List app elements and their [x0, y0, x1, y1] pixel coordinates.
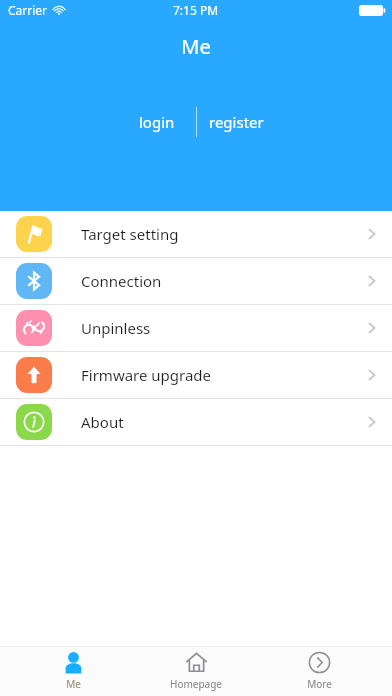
- staticText: Firmware upgrade: [81, 365, 364, 385]
- staticText: 7:15 PM: [173, 2, 219, 18]
- button[interactable]: Unpinless: [0, 305, 392, 351]
- button[interactable]: Target setting: [0, 211, 392, 257]
- button[interactable]: login: [118, 107, 196, 137]
- staticText: Carrier: [8, 2, 48, 18]
- staticText: register: [209, 112, 264, 132]
- staticText: Connection: [81, 271, 364, 291]
- staticText: Target setting: [81, 224, 364, 244]
- staticText: Me: [0, 33, 392, 60]
- staticText: Homepage: [170, 677, 222, 691]
- staticText: Me: [66, 677, 81, 691]
- button[interactable]: register: [197, 107, 275, 137]
- staticText: About: [81, 412, 364, 432]
- button[interactable]: About: [0, 399, 392, 445]
- staticText: login: [139, 112, 175, 132]
- staticText: Unpinless: [81, 318, 364, 338]
- button[interactable]: Firmware upgrade: [0, 352, 392, 398]
- button[interactable]: Connection: [0, 258, 392, 304]
- staticText: More: [307, 677, 332, 691]
- button[interactable]: Homepage: [146, 646, 246, 696]
- button[interactable]: More: [269, 646, 369, 696]
- button[interactable]: Me: [23, 646, 123, 696]
